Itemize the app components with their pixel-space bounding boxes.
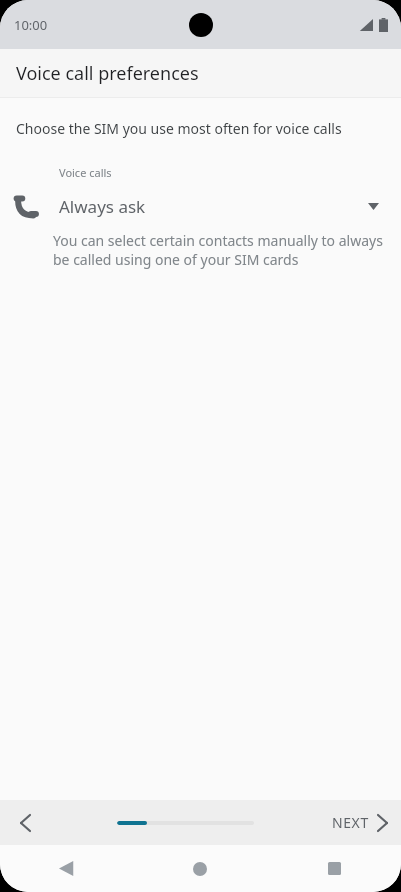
staticText: Always ask xyxy=(59,195,368,218)
staticText: You can select certain contacts manually… xyxy=(53,231,387,269)
staticText: 10:00 xyxy=(14,16,48,34)
staticText: Voice call preferences xyxy=(16,61,199,86)
button[interactable]: Recent apps xyxy=(267,845,401,892)
staticText: NEXT xyxy=(332,813,369,832)
staticText: Voice calls xyxy=(59,165,112,180)
staticText: Choose the SIM you use most often for vo… xyxy=(16,119,342,138)
button[interactable]: NEXT xyxy=(322,800,401,845)
button[interactable]: Home xyxy=(133,845,267,892)
button[interactable]: Back xyxy=(0,845,133,892)
button[interactable]: Always ask xyxy=(0,189,401,223)
button[interactable]: Back xyxy=(0,800,50,845)
